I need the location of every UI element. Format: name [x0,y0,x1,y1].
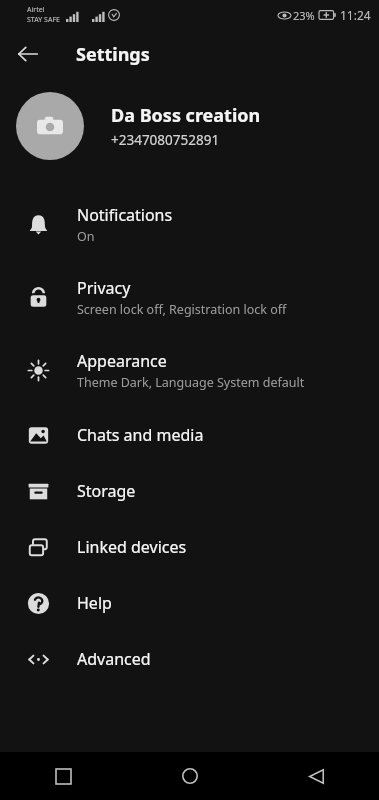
staticText: Airtel [27,5,45,15]
button[interactable]: Home [127,752,253,800]
button[interactable]: Recent apps [0,752,127,800]
staticText: Chats and media [77,424,204,446]
button[interactable]: Back [253,752,379,800]
staticText: Settings [76,42,150,67]
staticText: Notifications [77,204,173,226]
button[interactable]: Chats and media [0,407,379,463]
button[interactable]: Appearance [0,334,379,407]
staticText: Appearance [77,350,167,372]
staticText: Help [77,592,112,614]
staticText: On [77,228,95,245]
button[interactable]: Advanced [0,631,379,687]
staticText: Screen lock off, Registration lock off [77,301,287,318]
button[interactable]: Privacy [0,261,379,334]
staticText: 23% [293,8,315,23]
button[interactable]: Linked devices [0,519,379,575]
staticText: Advanced [77,648,151,670]
button[interactable]: Storage [0,463,379,519]
staticText: +2347080752891 [111,131,220,149]
staticText: Theme Dark, Language System default [77,374,305,391]
button[interactable]: Back [8,34,48,74]
staticText: Da Boss creation [111,103,261,128]
button[interactable]: Notifications [0,188,379,261]
staticText: 11:24 [340,7,371,23]
staticText: Linked devices [77,536,187,558]
button[interactable]: Da Boss creation [0,78,379,174]
staticText: Privacy [77,277,131,299]
staticText: Storage [77,480,136,502]
button[interactable]: Help [0,575,379,631]
staticText: STAY SAFE [27,15,60,25]
